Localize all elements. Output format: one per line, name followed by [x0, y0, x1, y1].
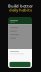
staticText: Build better: [8, 3, 33, 9]
staticText: daily habits: [9, 7, 32, 13]
